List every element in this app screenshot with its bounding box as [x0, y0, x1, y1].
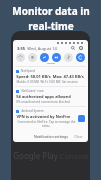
button[interactable]: NetSpeed — [13, 67, 88, 86]
button[interactable]: Quick setting 2 — [40, 53, 49, 62]
staticText: NetGuard · now — [21, 89, 44, 93]
staticText: 54 authorized apps allowed — [16, 94, 71, 99]
button[interactable]: Quick setting 1 — [28, 53, 37, 62]
staticText: Google Play — [12, 150, 59, 161]
staticText: 3:55 — [17, 46, 25, 51]
staticText: 0% unauthorized connections blocked — [16, 100, 70, 104]
button[interactable]: Android System — [13, 107, 88, 130]
button[interactable]: Settings — [78, 45, 84, 51]
staticText: Wed, August 14 — [27, 46, 57, 51]
button[interactable]: Quick setting 5 — [76, 53, 85, 62]
staticText: Connected to NetFire. Tap to manage the … — [16, 120, 77, 128]
staticText: Speed: 58.01 KB/s Max: 47.43 KB/s — [16, 74, 84, 79]
staticText: Monitor data in — [12, 4, 90, 18]
staticText: real-time — [28, 19, 74, 33]
button[interactable]: Search — [70, 45, 76, 51]
staticText: Android System — [21, 109, 44, 113]
other: VPN icon — [78, 115, 85, 122]
staticText: VPN is activated by NetFire — [16, 114, 71, 119]
button[interactable]: Notification settings — [33, 133, 69, 140]
button[interactable]: Quick setting 3 — [52, 53, 61, 62]
button[interactable]: Clear — [73, 133, 84, 140]
button[interactable]: Quick setting 0 — [16, 53, 25, 62]
button[interactable]: NetGuard · now — [13, 87, 88, 106]
staticText: Clear — [74, 134, 83, 139]
staticText: NetSpeed — [21, 69, 35, 73]
staticText: Console — [59, 150, 89, 161]
staticText: Notification settings — [34, 134, 68, 139]
staticText: Mobile: 0.00 MB Wi-Fi: 0.00 MB Sat sessi… — [16, 80, 78, 84]
button[interactable]: Quick setting 4 — [64, 53, 73, 62]
